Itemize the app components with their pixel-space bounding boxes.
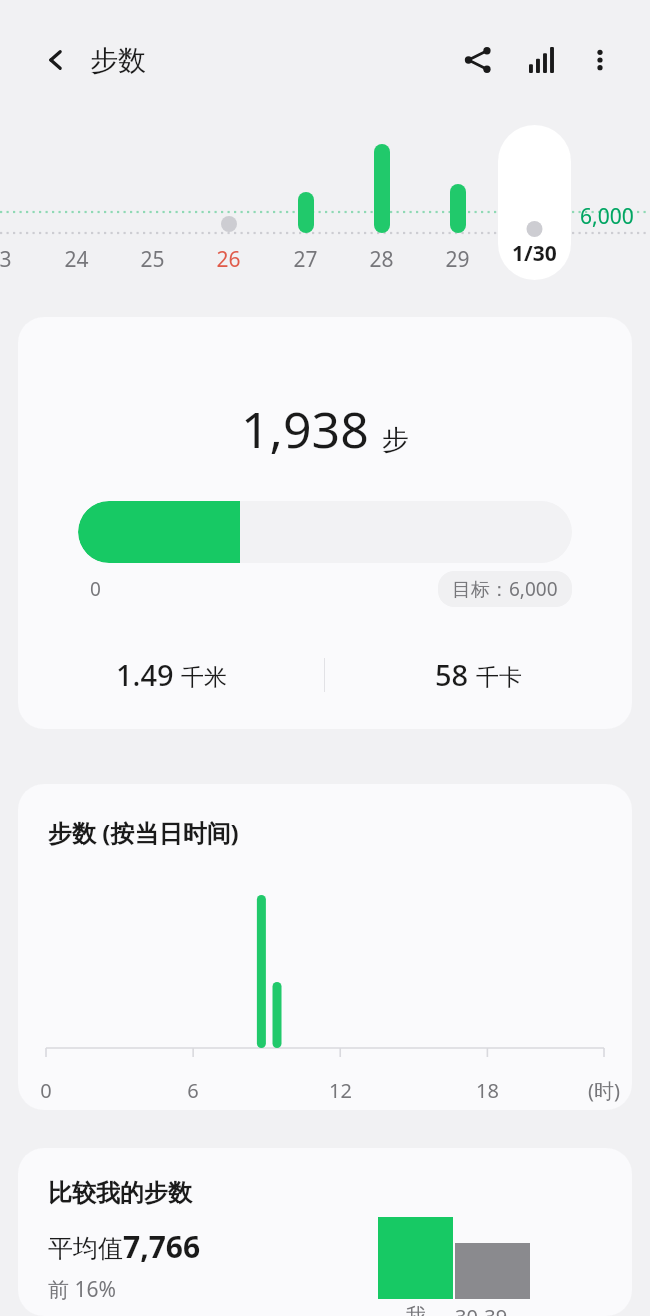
staticText: 3 bbox=[0, 245, 12, 274]
staticText: 目标：6,000 bbox=[452, 576, 558, 602]
staticText: 0 bbox=[40, 1077, 52, 1104]
staticText: 1/30 bbox=[512, 239, 557, 268]
staticText: 24 bbox=[64, 245, 89, 274]
staticText: 比较我的步数 bbox=[48, 1178, 192, 1208]
button[interactable]: Statistics bbox=[516, 34, 568, 86]
staticText: 26 bbox=[216, 245, 241, 274]
button[interactable]: Back bbox=[34, 38, 78, 82]
staticText: 我 bbox=[406, 1303, 426, 1316]
staticText: 千米 bbox=[181, 663, 227, 692]
staticText: 千卡 bbox=[476, 663, 522, 692]
staticText: 平均值 bbox=[48, 1233, 123, 1264]
staticText: 6,000 bbox=[580, 202, 634, 231]
staticText: 1.49 bbox=[116, 655, 174, 694]
staticText: 27 bbox=[293, 245, 318, 274]
staticText: 1,938 bbox=[241, 395, 369, 463]
staticText: 18 bbox=[476, 1077, 499, 1104]
staticText: 0 bbox=[90, 576, 101, 602]
button[interactable]: 比较我的步数 bbox=[18, 1148, 632, 1316]
staticText: 步 bbox=[382, 423, 409, 457]
staticText: 步数 bbox=[90, 43, 146, 78]
staticText: 6 bbox=[187, 1077, 199, 1104]
button[interactable]: More options bbox=[574, 34, 626, 86]
staticText: 12 bbox=[329, 1077, 352, 1104]
staticText: 25 bbox=[140, 245, 165, 274]
button[interactable]: Share bbox=[452, 34, 504, 86]
button[interactable]: 1/30 bbox=[498, 125, 571, 280]
staticText: 步数 (按当日时间) bbox=[48, 816, 239, 849]
button[interactable]: 1,938 bbox=[18, 317, 632, 729]
staticText: 7,766 bbox=[123, 1226, 201, 1267]
staticText: 30-39 bbox=[455, 1303, 508, 1316]
staticText: (时) bbox=[588, 1077, 620, 1104]
staticText: 58 bbox=[435, 655, 469, 694]
staticText: 29 bbox=[445, 245, 470, 274]
button[interactable]: 步数 (按当日时间) bbox=[18, 784, 632, 1110]
staticText: 28 bbox=[369, 245, 394, 274]
staticText: 前 16% bbox=[48, 1275, 116, 1304]
